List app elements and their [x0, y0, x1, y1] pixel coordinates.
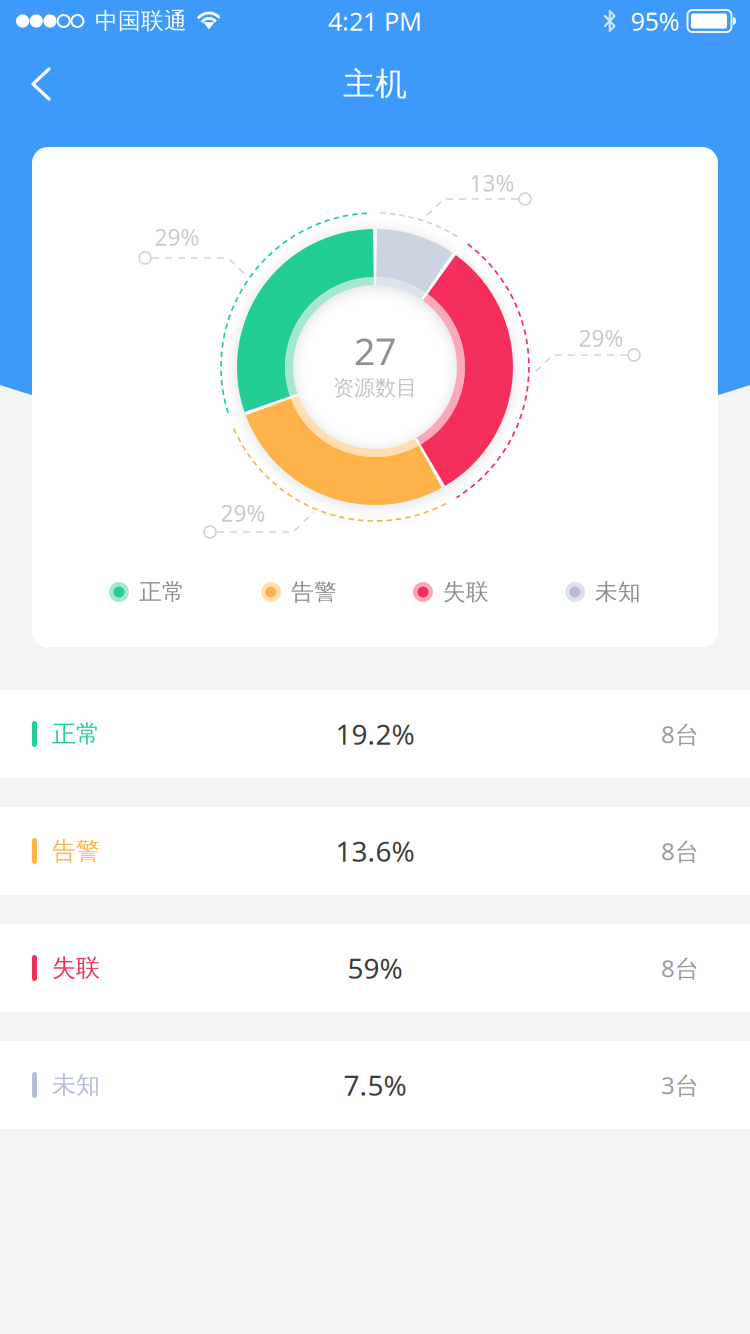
staticText: 13%	[469, 168, 514, 198]
staticText: 失联	[443, 578, 489, 606]
staticText: 13.6%	[335, 832, 414, 870]
staticText: 8台	[661, 952, 699, 984]
staticText: 未知	[595, 578, 641, 606]
button[interactable]: 未知	[0, 1041, 750, 1129]
staticText: 未知	[52, 1070, 100, 1100]
staticText: 8台	[661, 835, 699, 867]
staticText: 失联	[52, 953, 100, 983]
staticText: 59%	[347, 949, 402, 987]
button[interactable]: Back	[0, 50, 74, 118]
staticText: 主机	[343, 64, 407, 104]
staticText: 95%	[630, 4, 679, 38]
button[interactable]: 告警	[0, 807, 750, 895]
staticText: 中国联通	[95, 7, 187, 35]
button[interactable]: 正常	[0, 690, 750, 778]
staticText: 3台	[661, 1069, 699, 1101]
staticText: 告警	[291, 578, 337, 606]
staticText: 正常	[139, 578, 185, 606]
staticText: 29%	[154, 222, 199, 252]
staticText: 19.2%	[335, 715, 414, 753]
staticText: 27	[354, 326, 396, 376]
staticText: 4:21 PM	[328, 4, 422, 38]
staticText: 资源数目	[333, 375, 417, 401]
button[interactable]: 失联	[0, 924, 750, 1012]
staticText: 7.5%	[343, 1066, 406, 1104]
staticText: 29%	[578, 323, 623, 353]
staticText: 正常	[52, 719, 100, 749]
staticText: 告警	[52, 836, 100, 866]
staticText: 29%	[220, 498, 265, 528]
staticText: 8台	[661, 718, 699, 750]
